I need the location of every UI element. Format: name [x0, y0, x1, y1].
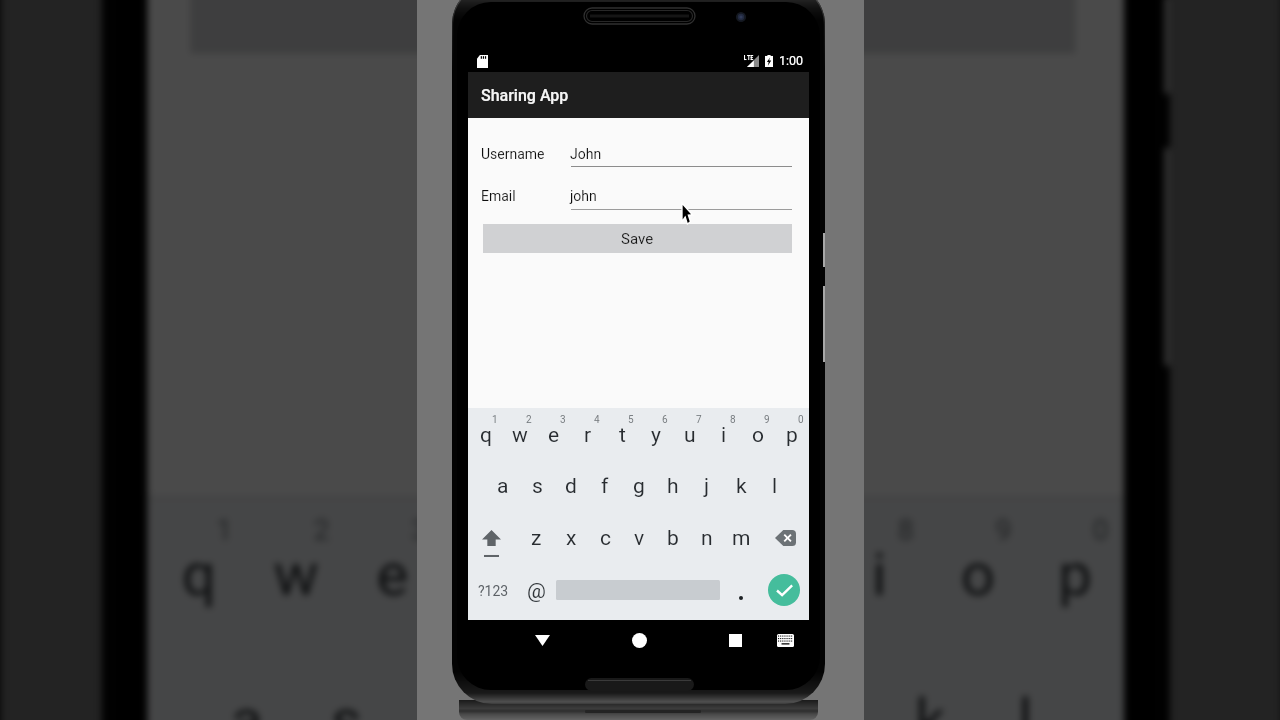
- button[interactable]: 4: [571, 408, 605, 460]
- staticText: l: [772, 474, 778, 499]
- button[interactable]: Recents: [717, 622, 753, 658]
- button[interactable]: k: [881, 646, 978, 720]
- staticText: j: [704, 474, 710, 499]
- button[interactable]: Backspace: [758, 512, 809, 564]
- button[interactable]: 1: [468, 408, 503, 460]
- staticText: 7: [696, 414, 702, 426]
- button[interactable]: 2: [503, 408, 537, 460]
- staticText: a: [497, 474, 509, 499]
- button[interactable]: s: [520, 460, 554, 512]
- staticText: John: [570, 146, 602, 162]
- staticText: u: [684, 423, 696, 448]
- staticText: f: [528, 686, 551, 720]
- staticText: i: [872, 540, 889, 612]
- button[interactable]: g: [588, 646, 686, 720]
- button[interactable]: Done: [768, 574, 800, 606]
- button[interactable]: 5: [540, 497, 637, 646]
- staticText: 1: [492, 414, 498, 426]
- staticText: k: [736, 474, 747, 499]
- button[interactable]: 8: [707, 408, 741, 460]
- button[interactable]: n: [690, 512, 724, 564]
- staticText: Save: [621, 230, 654, 248]
- staticText: 2: [313, 515, 331, 549]
- button[interactable]: f: [588, 460, 622, 512]
- button[interactable]: 4: [442, 497, 540, 646]
- staticText: d: [565, 474, 577, 499]
- button[interactable]: Space: [554, 566, 722, 616]
- button[interactable]: ?123: [471, 566, 516, 616]
- staticText: h: [717, 686, 752, 720]
- button[interactable]: j: [783, 646, 881, 720]
- button[interactable]: 1: [147, 497, 248, 646]
- staticText: john: [570, 188, 597, 204]
- button[interactable]: 3: [537, 408, 571, 460]
- button[interactable]: 0: [775, 408, 809, 460]
- staticText: w: [273, 540, 319, 612]
- button[interactable]: 3: [345, 497, 442, 646]
- staticText: a: [230, 686, 265, 720]
- staticText: x: [566, 526, 577, 551]
- staticText: l: [1018, 686, 1035, 720]
- staticText: n: [701, 526, 713, 551]
- staticText: o: [752, 423, 764, 448]
- button[interactable]: c: [588, 512, 622, 564]
- button[interactable]: h: [656, 460, 690, 512]
- staticText: 1: [216, 515, 233, 549]
- staticText: r: [584, 423, 592, 448]
- button[interactable]: x: [554, 512, 588, 564]
- button[interactable]: Save: [483, 224, 792, 253]
- button[interactable]: Home: [621, 622, 657, 658]
- button[interactable]: b: [656, 512, 690, 564]
- button[interactable]: 5: [605, 408, 639, 460]
- staticText: y: [651, 423, 661, 448]
- button[interactable]: @: [518, 566, 554, 616]
- button[interactable]: d: [554, 460, 588, 512]
- staticText: u: [766, 540, 800, 612]
- staticText: 8: [730, 414, 736, 426]
- button[interactable]: a: [485, 460, 520, 512]
- button[interactable]: g: [622, 460, 656, 512]
- button[interactable]: v: [622, 512, 656, 564]
- button[interactable]: Save: [190, 0, 1075, 54]
- button[interactable]: 7: [734, 497, 832, 646]
- button[interactable]: 7: [673, 408, 707, 460]
- staticText: w: [512, 423, 528, 448]
- button[interactable]: 8: [832, 497, 929, 646]
- button[interactable]: f: [491, 646, 588, 720]
- button[interactable]: Keyboard: [767, 622, 803, 658]
- button[interactable]: m: [724, 512, 758, 564]
- button[interactable]: 2: [248, 497, 345, 646]
- staticText: Username: [481, 146, 545, 162]
- staticText: g: [633, 474, 645, 499]
- button[interactable]: z: [519, 512, 554, 564]
- staticText: e: [376, 540, 411, 612]
- button[interactable]: 6: [639, 408, 673, 460]
- staticText: 9: [764, 414, 770, 426]
- staticText: t: [580, 540, 600, 612]
- button[interactable]: k: [724, 460, 758, 512]
- button[interactable]: Shift: [468, 512, 519, 564]
- button[interactable]: d: [394, 646, 491, 720]
- staticText: ?123: [478, 583, 509, 599]
- staticText: s: [532, 474, 543, 499]
- button[interactable]: j: [690, 460, 724, 512]
- staticText: r: [480, 540, 502, 612]
- button[interactable]: [725, 566, 757, 616]
- staticText: v: [634, 526, 645, 551]
- button[interactable]: 9: [741, 408, 775, 460]
- button[interactable]: Back: [524, 622, 560, 658]
- staticText: c: [600, 526, 611, 551]
- staticText: 6: [703, 515, 720, 549]
- button[interactable]: l: [978, 646, 1075, 720]
- staticText: 8: [898, 515, 915, 549]
- staticText: 4: [594, 414, 600, 426]
- button[interactable]: 0: [1027, 497, 1124, 646]
- button[interactable]: 6: [637, 497, 734, 646]
- staticText: b: [667, 526, 679, 551]
- button[interactable]: l: [758, 460, 792, 512]
- button[interactable]: s: [296, 646, 394, 720]
- button[interactable]: 9: [929, 497, 1027, 646]
- button[interactable]: h: [686, 646, 783, 720]
- button[interactable]: a: [196, 646, 296, 720]
